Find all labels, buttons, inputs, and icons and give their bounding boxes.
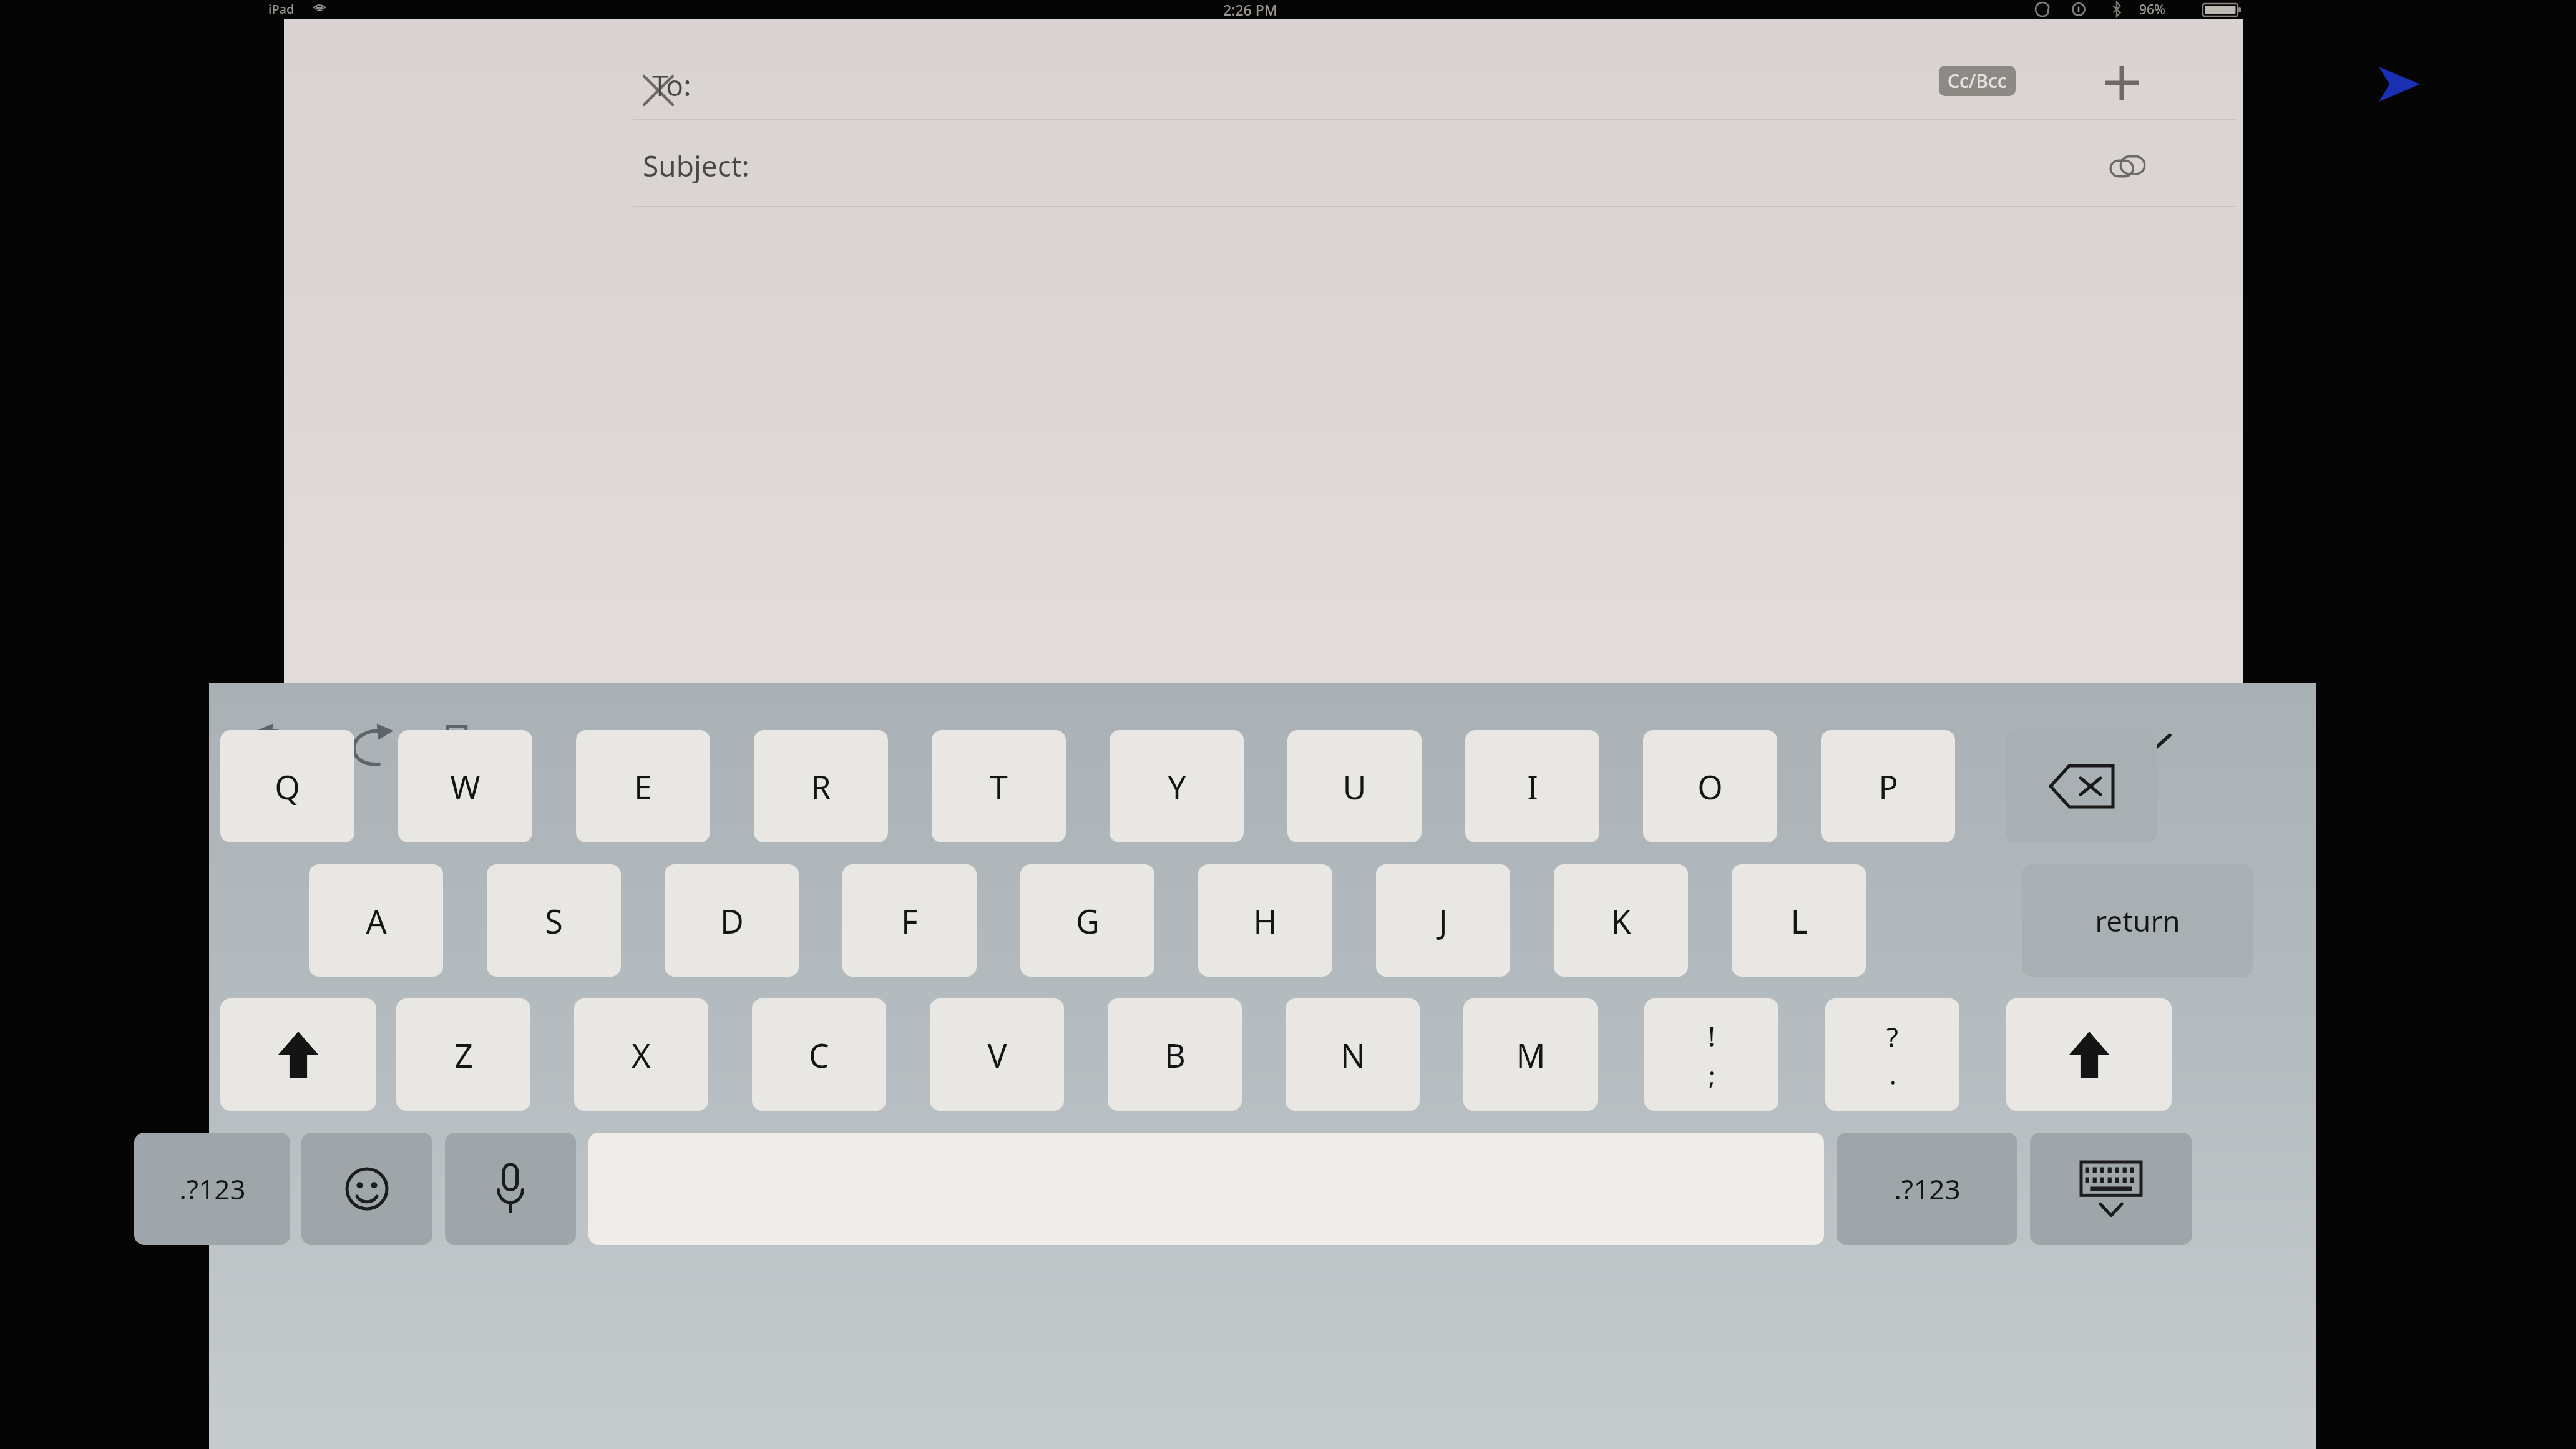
staticText: B: [1164, 1033, 1186, 1077]
staticText: A: [366, 899, 387, 943]
staticText: .?123: [179, 1170, 246, 1207]
staticText: S: [545, 899, 563, 943]
button[interactable]: V: [930, 998, 1064, 1111]
button[interactable]: J: [1376, 864, 1510, 977]
button[interactable]: L: [1732, 864, 1866, 977]
button[interactable]: X: [574, 998, 708, 1111]
button[interactable]: E: [576, 730, 710, 842]
staticText: R: [811, 764, 831, 809]
staticText: return: [2095, 901, 2180, 940]
staticText: 2:26 PM: [1223, 0, 1277, 19]
staticText: G: [1076, 899, 1100, 943]
staticText: L: [1790, 899, 1808, 943]
button[interactable]: F: [842, 864, 977, 977]
button[interactable]: To:: [284, 31, 2243, 125]
button[interactable]: D: [665, 864, 799, 977]
button[interactable]: Hide keyboard: [2030, 1133, 2192, 1245]
button[interactable]: .?123: [134, 1133, 290, 1245]
button[interactable]: Backspace: [2006, 730, 2157, 842]
staticText: H: [1253, 899, 1277, 943]
button[interactable]: Redo: [321, 708, 415, 783]
staticText: V: [987, 1033, 1007, 1077]
button[interactable]: A: [309, 864, 443, 977]
button[interactable]: I: [1465, 730, 1599, 842]
staticText: F: [901, 899, 918, 943]
staticText: P: [1878, 764, 1898, 809]
button[interactable]: M: [1463, 998, 1598, 1111]
staticText: .?123: [1894, 1170, 1961, 1207]
button[interactable]: Emoji: [301, 1133, 432, 1245]
button[interactable]: Y: [1110, 730, 1244, 842]
button[interactable]: Cc/Bcc: [1939, 66, 2016, 96]
button[interactable]: Shift: [220, 998, 376, 1111]
button[interactable]: H: [1198, 864, 1332, 977]
button[interactable]: G: [1020, 864, 1154, 977]
button[interactable]: Q: [220, 730, 354, 842]
button[interactable]: Dictate: [445, 1133, 576, 1245]
button[interactable]: O: [1643, 730, 1777, 842]
button[interactable]: Undo: [234, 708, 328, 783]
staticText: Subject:: [643, 146, 749, 185]
staticText: Cc/Bcc: [1948, 68, 2007, 94]
staticText: D: [720, 899, 744, 943]
staticText: E: [634, 764, 652, 809]
button[interactable]: N: [1286, 998, 1420, 1111]
button[interactable]: T: [932, 730, 1066, 842]
staticText: M: [1516, 1033, 1546, 1077]
staticText: X: [632, 1033, 651, 1077]
button[interactable]: K: [1554, 864, 1688, 977]
staticText: iPad: [268, 1, 295, 17]
staticText: To:: [652, 66, 691, 105]
staticText: .: [1890, 1058, 1896, 1091]
button[interactable]: C: [752, 998, 886, 1111]
button[interactable]: Attach file: [2094, 137, 2162, 200]
staticText: W: [450, 764, 481, 809]
button[interactable]: Z: [396, 998, 530, 1111]
button[interactable]: B: [1108, 998, 1242, 1111]
button[interactable]: Previous field: [2019, 702, 2112, 783]
staticText: T: [990, 764, 1008, 809]
button[interactable]: W: [398, 730, 532, 842]
button[interactable]: P: [1821, 730, 1955, 842]
staticText: I: [1527, 764, 1538, 809]
button[interactable]: Shift: [2006, 998, 2172, 1111]
staticText: U: [1342, 764, 1367, 809]
button[interactable]: Exclamation semicolon: [1644, 998, 1778, 1111]
staticText: O: [1697, 764, 1723, 809]
staticText: C: [809, 1033, 829, 1077]
button[interactable]: Copy: [407, 706, 501, 787]
button[interactable]: S: [487, 864, 621, 977]
button[interactable]: Close: [624, 56, 693, 125]
button[interactable]: return: [2022, 864, 2253, 977]
button[interactable]: Next field: [2106, 702, 2200, 783]
staticText: !: [1708, 1017, 1715, 1055]
staticText: Z: [454, 1033, 473, 1077]
staticText: 96%: [2139, 1, 2165, 19]
button[interactable]: Subject:: [284, 120, 2243, 207]
staticText: N: [1340, 1033, 1365, 1077]
staticText: J: [1438, 899, 1448, 943]
button[interactable]: Send: [2362, 50, 2437, 119]
button[interactable]: .?123: [1837, 1133, 2017, 1245]
staticText: Q: [275, 764, 300, 809]
button[interactable]: R: [754, 730, 888, 842]
button[interactable]: Question period: [1825, 998, 1959, 1111]
button[interactable]: Add recipient: [2087, 49, 2156, 117]
staticText: ?: [1886, 1018, 1899, 1055]
staticText: ;: [1709, 1058, 1715, 1092]
button[interactable]: U: [1287, 730, 1422, 842]
staticText: K: [1611, 899, 1631, 943]
staticText: Y: [1168, 764, 1186, 809]
